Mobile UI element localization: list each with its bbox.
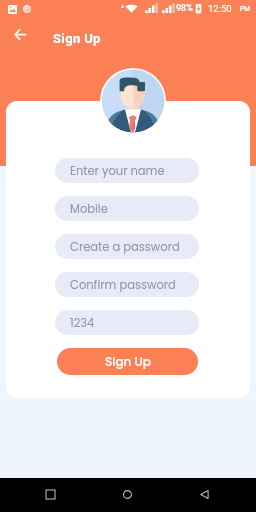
staticText: Confirm password [70,277,176,293]
staticText: 98% [176,3,193,14]
staticText: 12:50 [208,3,232,14]
staticText: Mobile [70,201,108,217]
staticText: 1234 [70,315,95,331]
staticText: Enter your name [70,163,165,179]
button[interactable]: Back [200,490,209,499]
button[interactable]: Recents [46,490,55,499]
button[interactable]: Enter your name [55,158,199,183]
button[interactable]: 1234 [55,310,199,335]
staticText: PM [240,5,251,13]
staticText: Sign Up [105,353,151,370]
button[interactable]: Create a password [55,234,199,259]
button[interactable]: Confirm password [55,272,199,297]
button[interactable]: Back [9,23,31,45]
button[interactable]: Home [123,490,132,499]
button[interactable]: Mobile [55,196,199,221]
button[interactable]: Sign Up [57,348,198,375]
staticText: Create a password [70,239,180,255]
staticText: Sign Up [53,31,101,46]
